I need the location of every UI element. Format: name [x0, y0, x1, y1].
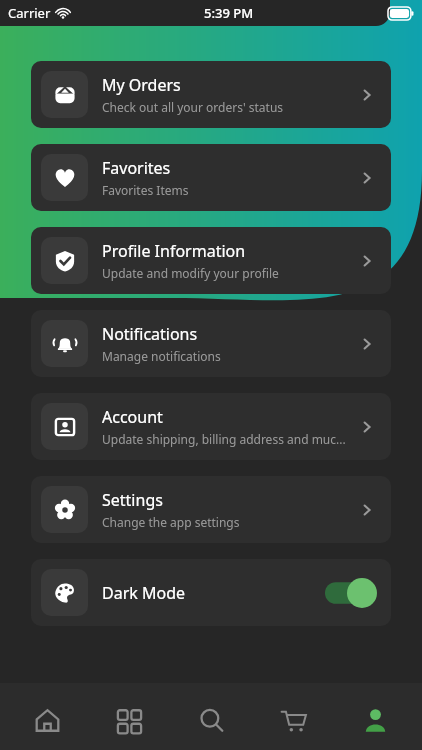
- other: Open: [359, 336, 375, 352]
- button[interactable]: Notifications: [31, 310, 391, 377]
- staticText: Change the app settings: [102, 514, 240, 530]
- staticText: Favorites: [102, 157, 171, 179]
- button[interactable]: Profile: [340, 683, 410, 750]
- staticText: My Orders: [102, 74, 181, 96]
- other: Open: [359, 502, 375, 518]
- other: Open: [359, 419, 375, 435]
- staticText: Notifications: [102, 323, 198, 345]
- button[interactable]: Categories: [94, 683, 164, 750]
- staticText: Profile Information: [102, 240, 246, 262]
- staticText: Settings: [102, 489, 163, 511]
- button[interactable]: Dark Mode: [31, 559, 391, 626]
- staticText: Manage notifications: [102, 348, 221, 364]
- button[interactable]: Search: [176, 683, 246, 750]
- other: Open: [359, 253, 375, 269]
- button[interactable]: Settings: [31, 476, 391, 543]
- staticText: Account: [102, 406, 163, 428]
- other: Open: [359, 87, 375, 103]
- button[interactable]: My Orders: [31, 61, 391, 128]
- button[interactable]: Home: [12, 683, 82, 750]
- button[interactable]: Account: [31, 393, 391, 460]
- staticText: 5:39 PM: [204, 4, 254, 22]
- other: Open: [359, 170, 375, 186]
- button[interactable]: Profile Information: [31, 227, 391, 294]
- staticText: Update shipping, billing address and muc…: [102, 431, 346, 447]
- staticText: Check out all your orders' status: [102, 99, 284, 115]
- staticText: Update and modify your profile: [102, 265, 279, 281]
- button[interactable]: Cart: [258, 683, 328, 750]
- staticText: Favorites Items: [102, 182, 189, 198]
- staticText: Carrier: [8, 4, 51, 22]
- button[interactable]: Favorites: [31, 144, 391, 211]
- staticText: Dark Mode: [102, 582, 325, 604]
- button[interactable]: Dark Mode toggle: [325, 578, 377, 608]
